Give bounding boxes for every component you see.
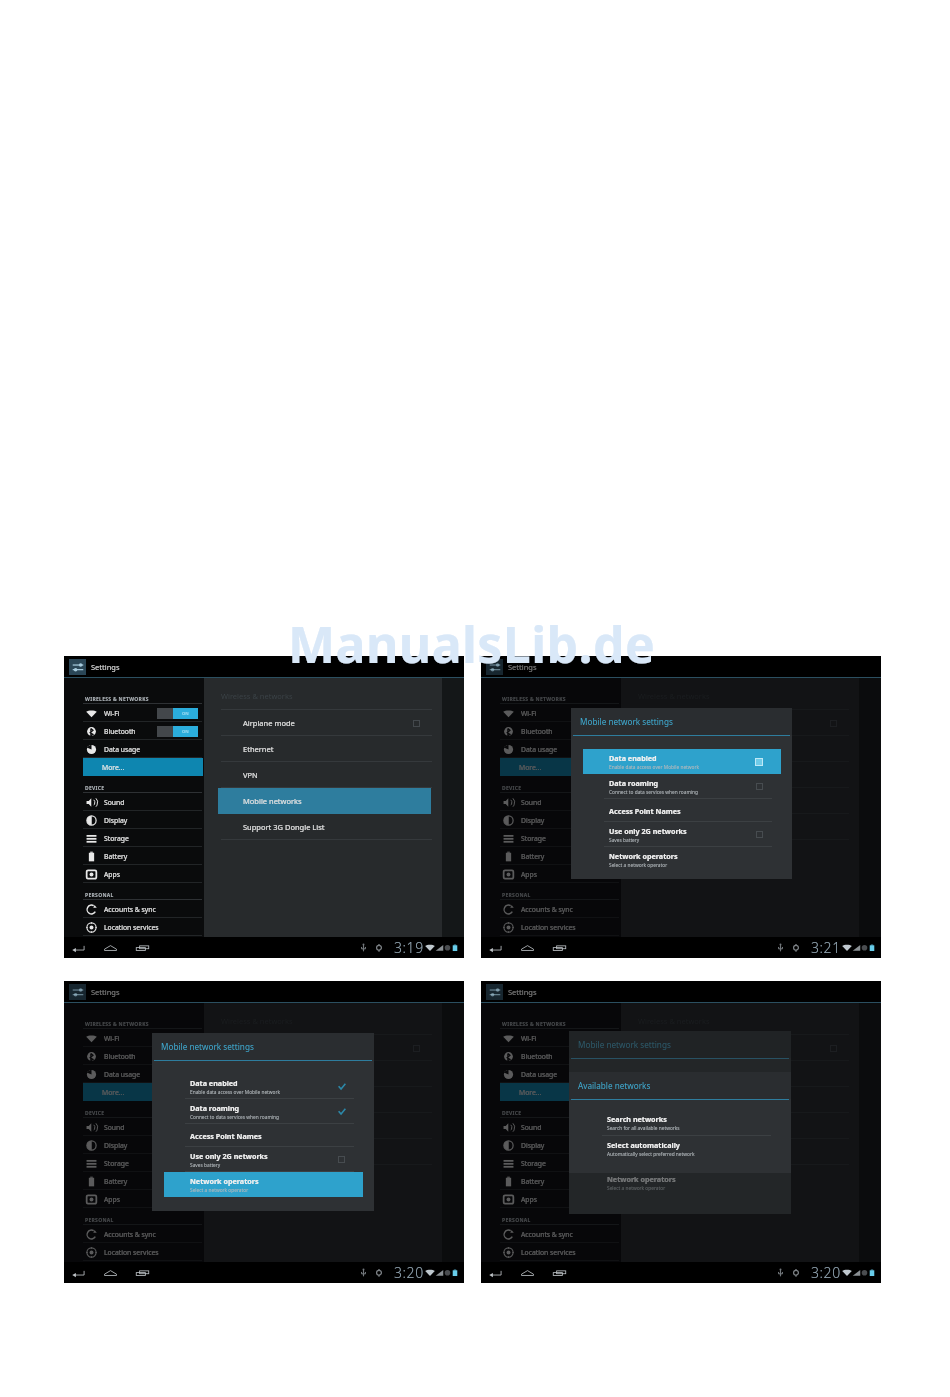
button[interactable]: Data enabled — [152, 1074, 374, 1099]
button[interactable]: Airplane mode — [624, 710, 881, 736]
button[interactable]: Accounts & sync — [481, 1225, 621, 1243]
button[interactable]: Support 3G Dongle List — [207, 814, 464, 840]
button[interactable]: Data usage — [481, 740, 621, 758]
button[interactable]: Recents — [134, 1266, 151, 1280]
button[interactable]: Data roaming — [571, 774, 792, 799]
button[interactable]: Bluetooth — [64, 722, 204, 740]
button[interactable]: Back — [70, 1266, 87, 1280]
button[interactable]: Data roaming — [152, 1099, 374, 1124]
button[interactable]: Sound — [64, 793, 204, 811]
button[interactable]: VPN — [624, 1087, 881, 1113]
button[interactable]: Access Point Names — [571, 799, 792, 822]
button[interactable]: Data usage — [481, 1065, 621, 1083]
staticText: Select a network operator — [609, 862, 668, 869]
button[interactable]: Display — [481, 811, 621, 829]
button[interactable]: VPN — [207, 762, 464, 788]
button[interactable]: Data usage — [64, 740, 204, 758]
button[interactable]: Location services — [64, 1243, 204, 1261]
button[interactable]: Ethernet — [624, 736, 881, 762]
button[interactable]: Apps — [64, 865, 204, 883]
staticText: Support 3G Dongle List — [243, 1147, 325, 1157]
button[interactable]: Sound — [64, 1118, 204, 1136]
button[interactable]: Bluetooth — [481, 1047, 621, 1065]
button[interactable]: Network operators — [571, 847, 792, 872]
button[interactable]: Airplane mode — [207, 1035, 464, 1061]
button[interactable]: Airplane mode — [207, 710, 464, 736]
button[interactable]: Network operators — [569, 1170, 791, 1195]
button[interactable]: Data usage — [64, 1065, 204, 1083]
button[interactable]: Storage — [481, 1154, 621, 1172]
button[interactable]: Battery — [64, 1172, 204, 1190]
button[interactable]: Mobile networks — [207, 1113, 464, 1139]
button[interactable]: Home — [102, 941, 119, 955]
button[interactable]: Network operators — [152, 1172, 374, 1197]
button[interactable]: Location services — [64, 918, 204, 936]
button[interactable]: Wi-Fi — [64, 1029, 204, 1047]
staticText: DEVICE — [502, 1110, 522, 1117]
button[interactable]: Location services — [481, 1243, 621, 1261]
button[interactable]: Battery — [481, 1172, 621, 1190]
button[interactable]: Mobile networks — [624, 1113, 881, 1139]
button[interactable]: Display — [481, 1136, 621, 1154]
button[interactable]: Display — [64, 811, 204, 829]
button[interactable]: Accounts & sync — [64, 900, 204, 918]
button[interactable]: Battery — [64, 847, 204, 865]
button[interactable]: Search networks — [569, 1110, 791, 1136]
button[interactable]: Wi-Fi — [481, 704, 621, 722]
button[interactable]: Back — [70, 941, 87, 955]
button[interactable]: Support 3G Dongle List — [624, 1139, 881, 1165]
button[interactable]: Support 3G Dongle List — [624, 814, 881, 840]
button[interactable]: Support 3G Dongle List — [207, 1139, 464, 1165]
button[interactable]: Storage — [481, 829, 621, 847]
button[interactable]: Data enabled — [571, 749, 792, 774]
button[interactable]: Access Point Names — [152, 1124, 374, 1147]
button[interactable]: More... — [481, 758, 621, 776]
button[interactable]: Back — [487, 941, 504, 955]
button[interactable]: Sound — [481, 793, 621, 811]
button[interactable]: Display — [64, 1136, 204, 1154]
button[interactable]: Apps — [64, 1190, 204, 1208]
button[interactable]: Apps — [481, 865, 621, 883]
button[interactable]: Home — [519, 941, 536, 955]
button[interactable]: Apps — [481, 1190, 621, 1208]
button[interactable]: More... — [481, 1083, 621, 1101]
staticText: Wi-Fi — [521, 1034, 537, 1043]
button[interactable]: Recents — [134, 941, 151, 955]
button[interactable]: Select automatically — [569, 1136, 791, 1162]
button[interactable]: Airplane mode — [624, 1035, 881, 1061]
button[interactable]: Recents — [551, 941, 568, 955]
button[interactable]: Mobile networks — [624, 788, 881, 814]
button[interactable]: Use only 2G networks — [569, 1145, 791, 1170]
button[interactable]: Wi-Fi — [481, 1029, 621, 1047]
button[interactable]: Storage — [64, 1154, 204, 1172]
button[interactable]: VPN — [624, 762, 881, 788]
button[interactable]: Recents — [551, 1266, 568, 1280]
button[interactable]: More... — [64, 1083, 204, 1101]
button[interactable]: Use only 2G networks — [152, 1147, 374, 1172]
button[interactable]: Sound — [481, 1118, 621, 1136]
button[interactable]: Bluetooth — [481, 722, 621, 740]
button[interactable]: Battery — [481, 847, 621, 865]
button[interactable]: Wi-Fi — [64, 704, 204, 722]
button[interactable]: Back — [487, 1266, 504, 1280]
button[interactable]: Accounts & sync — [481, 900, 621, 918]
button[interactable]: Storage — [64, 829, 204, 847]
button[interactable]: Data roaming — [569, 1097, 791, 1122]
button[interactable]: Accounts & sync — [64, 1225, 204, 1243]
button[interactable]: Access Point Names — [569, 1122, 791, 1145]
button[interactable]: Data enabled — [569, 1072, 791, 1097]
button[interactable]: Home — [519, 1266, 536, 1280]
button[interactable]: Use only 2G networks — [571, 822, 792, 847]
button[interactable]: Bluetooth — [64, 1047, 204, 1065]
button[interactable]: Ethernet — [207, 1061, 464, 1087]
button[interactable]: Ethernet — [624, 1061, 881, 1087]
button[interactable]: VPN — [207, 1087, 464, 1113]
button[interactable]: Ethernet — [207, 736, 464, 762]
button[interactable]: Location services — [481, 918, 621, 936]
button[interactable]: Mobile networks — [207, 788, 464, 814]
staticText: More... — [519, 1088, 542, 1097]
button[interactable]: More... — [64, 758, 204, 776]
button[interactable]: Home — [102, 1266, 119, 1280]
staticText: 3:20 — [811, 1263, 841, 1282]
